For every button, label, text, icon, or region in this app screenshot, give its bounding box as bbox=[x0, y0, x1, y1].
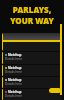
staticText: Details here bbox=[5, 57, 22, 61]
staticText: PARLAYS, bbox=[0, 4, 64, 15]
staticText: Matchup bbox=[8, 53, 22, 57]
staticText: Matchup bbox=[8, 78, 22, 82]
button[interactable] bbox=[2, 33, 62, 51]
staticText: YOUR WAY bbox=[0, 15, 64, 26]
staticText: Matchup bbox=[8, 90, 22, 94]
staticText: Details here bbox=[5, 94, 22, 98]
button[interactable]: Matchup bbox=[2, 89, 62, 100]
button[interactable]: Matchup bbox=[2, 65, 62, 76]
staticText: Details here bbox=[5, 82, 22, 86]
button[interactable]: Place bet bbox=[49, 88, 61, 93]
staticText: Details here bbox=[5, 70, 22, 74]
button[interactable]: Matchup bbox=[2, 52, 62, 64]
staticText: Matchup bbox=[8, 66, 22, 70]
button[interactable]: Matchup bbox=[2, 77, 62, 88]
